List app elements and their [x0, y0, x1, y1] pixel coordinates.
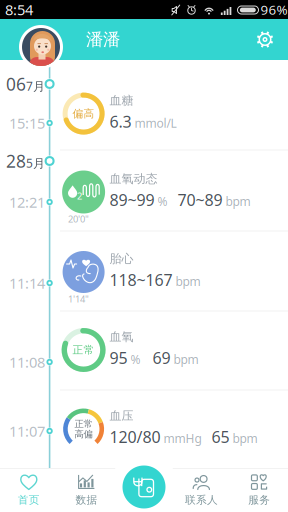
- staticText: 118~167: [110, 269, 173, 290]
- staticText: 11:07: [9, 421, 45, 441]
- staticText: 血氧动态: [110, 171, 158, 186]
- staticText: 胎心: [110, 251, 134, 266]
- staticText: 15:15: [9, 113, 45, 133]
- staticText: 11:14: [9, 273, 45, 293]
- staticText: 95: [110, 347, 128, 368]
- button[interactable]: 正常: [62, 321, 288, 379]
- staticText: bpm: [176, 273, 201, 289]
- staticText: 8:54: [5, 0, 33, 19]
- staticText: 69: [153, 347, 171, 368]
- staticText: 首页: [18, 493, 40, 506]
- staticText: 70~89: [178, 189, 223, 210]
- staticText: 正常: [75, 418, 93, 429]
- button[interactable]: 联系人: [173, 468, 230, 512]
- staticText: 联系人: [185, 493, 218, 506]
- staticText: bpm: [226, 193, 251, 209]
- button[interactable]: Measure: [122, 465, 165, 508]
- staticText: 2: [77, 190, 82, 202]
- staticText: 20'0": [68, 213, 89, 225]
- staticText: 89~99: [110, 189, 155, 210]
- staticText: 数据: [75, 493, 97, 506]
- staticText: 11:08: [9, 352, 45, 372]
- button[interactable]: Settings: [248, 22, 282, 56]
- button[interactable]: 数据: [58, 468, 115, 512]
- staticText: bpm: [174, 351, 199, 367]
- staticText: 120/80: [110, 426, 161, 447]
- staticText: 偏高: [73, 107, 95, 120]
- staticText: 高偏: [75, 428, 93, 440]
- button[interactable]: 偏高: [62, 85, 288, 143]
- staticText: 血压: [110, 408, 134, 423]
- button[interactable]: 正常: [62, 400, 288, 458]
- staticText: mmHg: [164, 430, 202, 446]
- button[interactable]: 服务: [230, 468, 288, 512]
- staticText: 28: [6, 149, 26, 172]
- staticText: 12:21: [9, 192, 45, 212]
- button[interactable]: 首页: [0, 468, 58, 512]
- staticText: 正常: [73, 343, 95, 356]
- staticText: bpm: [233, 430, 258, 446]
- staticText: 血氧: [110, 329, 134, 344]
- staticText: %: [131, 351, 141, 367]
- staticText: 06: [6, 72, 26, 95]
- staticText: 服务: [248, 493, 270, 506]
- staticText: 65: [212, 426, 230, 447]
- staticText: 7月: [26, 78, 45, 94]
- staticText: 血糖: [110, 93, 134, 108]
- button[interactable]: 1'14": [62, 241, 288, 303]
- staticText: %: [158, 193, 168, 209]
- staticText: 潘潘: [86, 29, 120, 50]
- staticText: 1'14": [68, 293, 89, 305]
- staticText: mmol/L: [135, 115, 177, 131]
- staticText: 6.3: [110, 111, 132, 132]
- staticText: 5月: [26, 155, 45, 171]
- button[interactable]: 2: [62, 161, 288, 223]
- staticText: 96%: [260, 1, 287, 18]
